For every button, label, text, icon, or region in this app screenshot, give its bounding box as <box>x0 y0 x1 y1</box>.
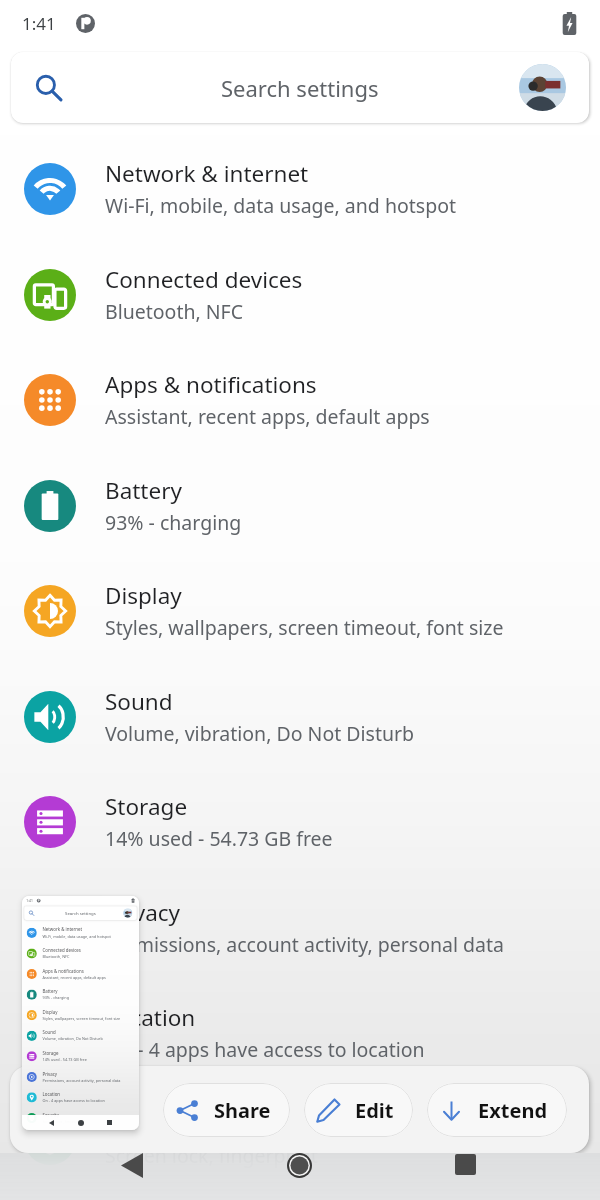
button[interactable]: Screenshot preview <box>22 896 139 1130</box>
staticText: Privacy <box>105 897 181 928</box>
staticText: Screen lock, fingerprint <box>42 1119 84 1124</box>
staticText: Volume, vibration, Do Not Disturb <box>42 1036 103 1042</box>
staticText: Permissions, account activity, personal … <box>42 1077 120 1083</box>
staticText: Display <box>42 1009 57 1015</box>
staticText: 93% - charging <box>42 995 69 1001</box>
staticText: Edit <box>355 1097 394 1124</box>
staticText: Search settings <box>221 73 379 103</box>
staticText: Display <box>105 580 182 611</box>
button[interactable]: Battery <box>22 984 139 1005</box>
button[interactable]: Connected devices <box>22 943 139 964</box>
button[interactable]: Share <box>163 1083 290 1137</box>
staticText: Wi-Fi, mobile, data usage, and hotspot <box>105 192 456 219</box>
button[interactable]: Privacy <box>22 1067 139 1087</box>
button[interactable]: Storage <box>0 769 600 874</box>
staticText: On - 4 apps have access to location <box>42 1098 105 1103</box>
staticText: 1:41 <box>26 898 33 903</box>
staticText: 1:41 <box>22 12 56 35</box>
staticText: Permissions, account activity, personal … <box>105 931 504 958</box>
staticText: Sound <box>42 1030 56 1036</box>
button[interactable]: Security <box>0 1086 600 1191</box>
staticText: Share <box>214 1097 271 1124</box>
button[interactable]: Display <box>0 558 600 663</box>
button[interactable]: Security <box>22 1108 139 1128</box>
button[interactable]: Location <box>0 980 600 1085</box>
staticText: Assistant, recent apps, default apps <box>105 403 430 430</box>
staticText: Location <box>105 1002 196 1033</box>
staticText: Search settings <box>65 910 96 916</box>
staticText: 14% used - 54.73 GB free <box>105 825 333 852</box>
button[interactable]: Connected devices <box>0 242 600 347</box>
button[interactable]: Network & internet <box>22 922 139 943</box>
staticText: Network & internet <box>105 158 309 189</box>
button[interactable]: Account <box>123 908 132 918</box>
button[interactable]: Search <box>24 906 137 920</box>
button[interactable]: Sound <box>22 1025 139 1046</box>
button[interactable]: Privacy <box>0 875 600 980</box>
button[interactable]: Battery <box>0 453 600 558</box>
button[interactable]: Apps & notifications <box>22 964 139 984</box>
button[interactable]: Apps & notifications <box>0 347 600 452</box>
staticText: Extend <box>478 1097 548 1124</box>
staticText: Privacy <box>42 1071 57 1077</box>
button[interactable]: Location <box>22 1087 139 1108</box>
staticText: 93% - charging <box>105 509 242 536</box>
staticText: Location <box>42 1091 60 1097</box>
staticText: Battery <box>42 989 57 995</box>
staticText: Bluetooth, NFC <box>105 298 244 325</box>
staticText: Wi-Fi, mobile, data usage, and hotspot <box>42 933 111 939</box>
staticText: Storage <box>42 1050 59 1056</box>
staticText: Styles, wallpapers, screen timeout, font… <box>42 1016 120 1021</box>
other: Search <box>29 911 34 916</box>
staticText: Assistant, recent apps, default apps <box>42 975 106 980</box>
button[interactable]: Edit <box>304 1083 413 1137</box>
button[interactable]: Extend <box>427 1083 567 1137</box>
button[interactable]: Account <box>519 64 566 111</box>
staticText: 14% used - 54.73 GB free <box>42 1057 87 1062</box>
button[interactable]: Network & internet <box>0 136 600 241</box>
other: Recents <box>455 1154 476 1175</box>
other: Back <box>121 1153 143 1178</box>
staticText: Battery <box>105 475 182 506</box>
staticText: Network & internet <box>42 927 82 933</box>
staticText: Apps & notifications <box>105 369 317 400</box>
button[interactable]: Storage <box>22 1046 139 1066</box>
staticText: Apps & notifications <box>42 968 84 974</box>
staticText: Connected devices <box>42 947 81 953</box>
staticText: Styles, wallpapers, screen timeout, font… <box>105 614 504 641</box>
button[interactable]: Display <box>22 1005 139 1025</box>
staticText: On - 4 apps have access to location <box>105 1036 425 1063</box>
staticText: Bluetooth, NFC <box>42 954 70 959</box>
staticText: Connected devices <box>105 264 303 295</box>
other: Home <box>287 1153 312 1178</box>
staticText: Storage <box>105 791 188 822</box>
staticText: Sound <box>105 686 173 717</box>
staticText: Security <box>105 1108 190 1139</box>
staticText: Volume, vibration, Do Not Disturb <box>105 720 415 747</box>
button[interactable]: Search <box>11 52 589 123</box>
staticText: Security <box>42 1112 59 1118</box>
other: Search <box>36 75 62 101</box>
button[interactable]: Sound <box>0 664 600 769</box>
staticText: Screen lock, fingerprint <box>105 1142 318 1169</box>
